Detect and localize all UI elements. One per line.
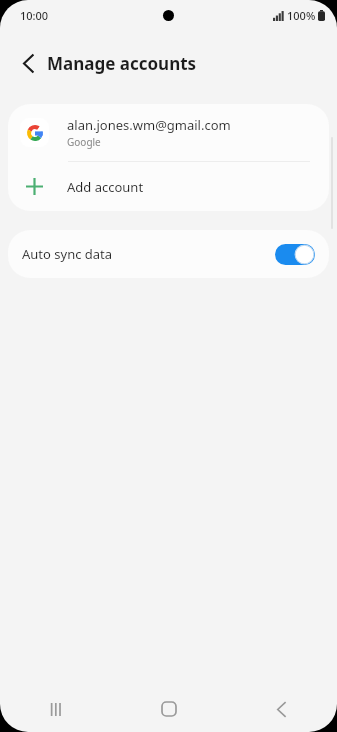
button[interactable]: Back [225,686,337,732]
staticText: 10:00 [20,8,49,23]
staticText: 100% [287,8,316,23]
staticText: Google [67,135,101,149]
button[interactable]: Add account [8,162,329,211]
button[interactable]: Auto sync data [8,230,329,278]
button[interactable]: alan.jones.wm@gmail.com [8,104,329,161]
button[interactable]: Auto sync data toggle [275,244,315,265]
button[interactable]: Recent apps [0,686,113,732]
button[interactable]: Home [113,686,225,732]
staticText: alan.jones.wm@gmail.com [67,116,231,134]
staticText: Manage accounts [47,52,197,75]
staticText: Add account [67,178,144,196]
staticText: Auto sync data [22,245,275,263]
button[interactable]: Back [12,47,44,79]
